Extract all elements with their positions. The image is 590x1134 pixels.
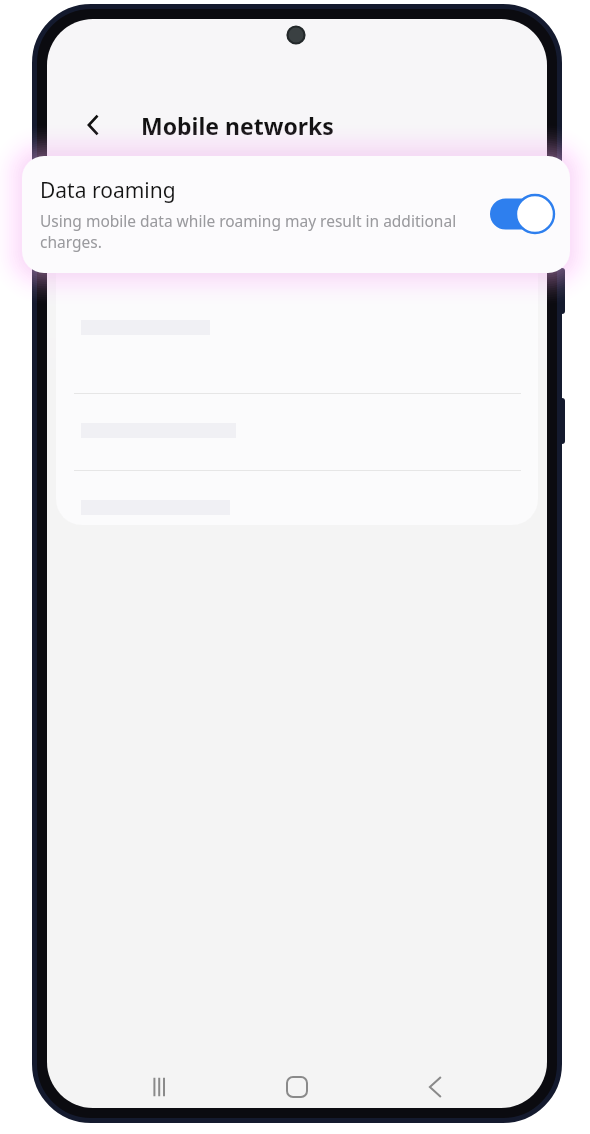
button[interactable]: Home	[269, 1066, 325, 1108]
button[interactable]: Recent apps	[134, 1066, 190, 1108]
staticText: Mobile networks	[141, 110, 334, 141]
staticText: Using mobile data while roaming may resu…	[40, 210, 470, 253]
button[interactable]: Data roaming	[22, 156, 570, 273]
button[interactable]: Back	[407, 1066, 463, 1108]
staticText: Data roaming	[40, 176, 176, 205]
button[interactable]: Back	[69, 101, 117, 149]
button[interactable]: Data roaming toggle, on	[490, 190, 552, 238]
